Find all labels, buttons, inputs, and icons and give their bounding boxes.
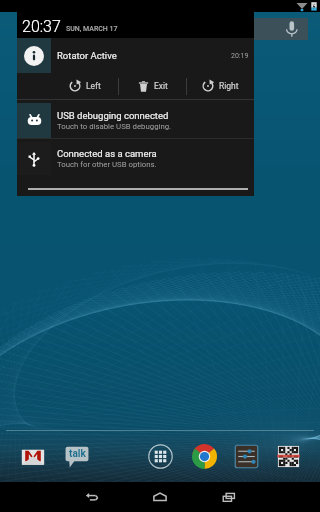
staticText: Touch for other USB options.: [57, 160, 157, 169]
button[interactable]: Left: [51, 73, 118, 99]
button[interactable]: Talk: [60, 439, 94, 473]
staticText: Exit: [154, 81, 168, 91]
staticText: Rotator Active: [57, 50, 117, 61]
staticText: 20:19: [231, 52, 249, 60]
staticText: USB debugging connected: [57, 110, 169, 121]
button[interactable]: Barcode scanner: [271, 439, 305, 473]
button[interactable]: Chrome: [187, 439, 221, 473]
button[interactable]: Recents: [214, 482, 244, 512]
staticText: Connected as a camera: [57, 148, 157, 159]
staticText: Touch to disable USB debugging.: [57, 122, 172, 131]
button[interactable]: USB debugging connected: [17, 103, 254, 138]
button[interactable]: Voice search: [254, 18, 308, 40]
staticText: 20:37: [22, 17, 61, 36]
button[interactable]: Back: [77, 482, 107, 512]
button[interactable]: All apps: [143, 439, 177, 473]
button[interactable]: Settings: [229, 439, 263, 473]
button[interactable]: Home: [145, 482, 175, 512]
button[interactable]: Exit: [119, 73, 186, 99]
staticText: Left: [86, 81, 101, 91]
staticText: Right: [219, 81, 239, 91]
button[interactable]: Connected as a camera: [17, 142, 254, 175]
button[interactable]: Rotator Active: [17, 38, 254, 73]
staticText: SUN, MARCH 17: [66, 25, 118, 33]
button[interactable]: Right: [187, 73, 254, 99]
staticText: talk: [69, 448, 86, 460]
button[interactable]: Gmail: [16, 440, 50, 474]
